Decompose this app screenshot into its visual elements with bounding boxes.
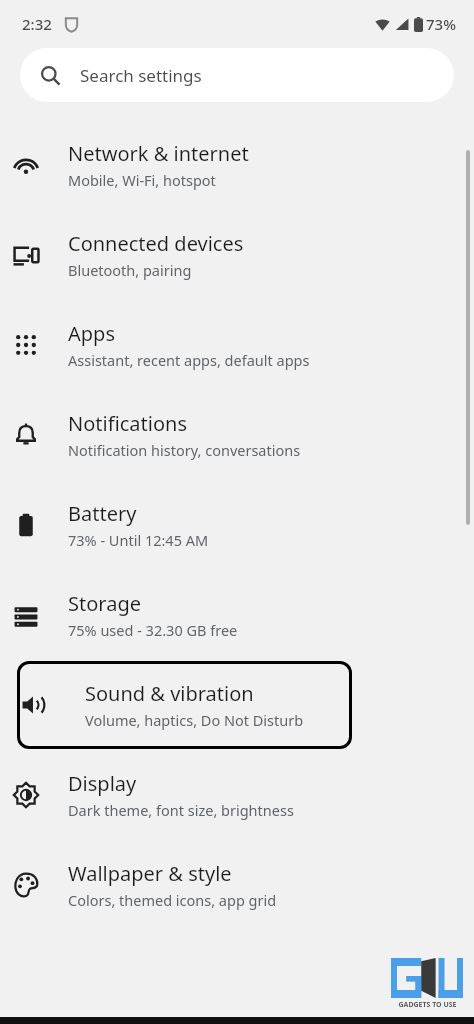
staticText: Notifications [68,410,187,437]
button[interactable]: Battery [0,480,474,570]
staticText: Dark theme, font size, brightness [68,800,294,820]
button[interactable]: Notifications [0,390,474,480]
staticText: Connected devices [68,230,244,257]
staticText: 2:32 [22,14,52,34]
staticText: Assistant, recent apps, default apps [68,350,310,370]
button[interactable]: Wallpaper & style [0,840,474,930]
staticText: GADGETS TO USE [398,1000,457,1010]
button[interactable]: Apps [0,300,474,390]
staticText: 75% used - 32.30 GB free [68,620,238,640]
button[interactable]: Connected devices [0,210,474,300]
staticText: Colors, themed icons, app grid [68,890,277,910]
button[interactable]: Storage [0,570,474,660]
staticText: Battery [68,500,137,527]
staticText: Storage [68,590,141,617]
staticText: Search settings [80,64,202,87]
button[interactable]: Search settings [20,48,454,102]
staticText: Apps [68,320,115,347]
staticText: Sound & vibration [85,680,254,707]
button[interactable]: Display [0,750,474,840]
staticText: Notification history, conversations [68,440,301,460]
button[interactable]: Network & internet [0,120,474,210]
staticText: 73% - Until 12:45 AM [68,530,209,550]
button[interactable]: Sound & vibration [17,661,352,749]
staticText: 73% [426,14,456,34]
staticText: Mobile, Wi-Fi, hotspot [68,170,216,190]
staticText: Bluetooth, pairing [68,260,192,280]
staticText: Volume, haptics, Do Not Disturb [85,710,304,730]
staticText: Network & internet [68,140,249,167]
staticText: Wallpaper & style [68,860,232,887]
staticText: Display [68,770,137,797]
